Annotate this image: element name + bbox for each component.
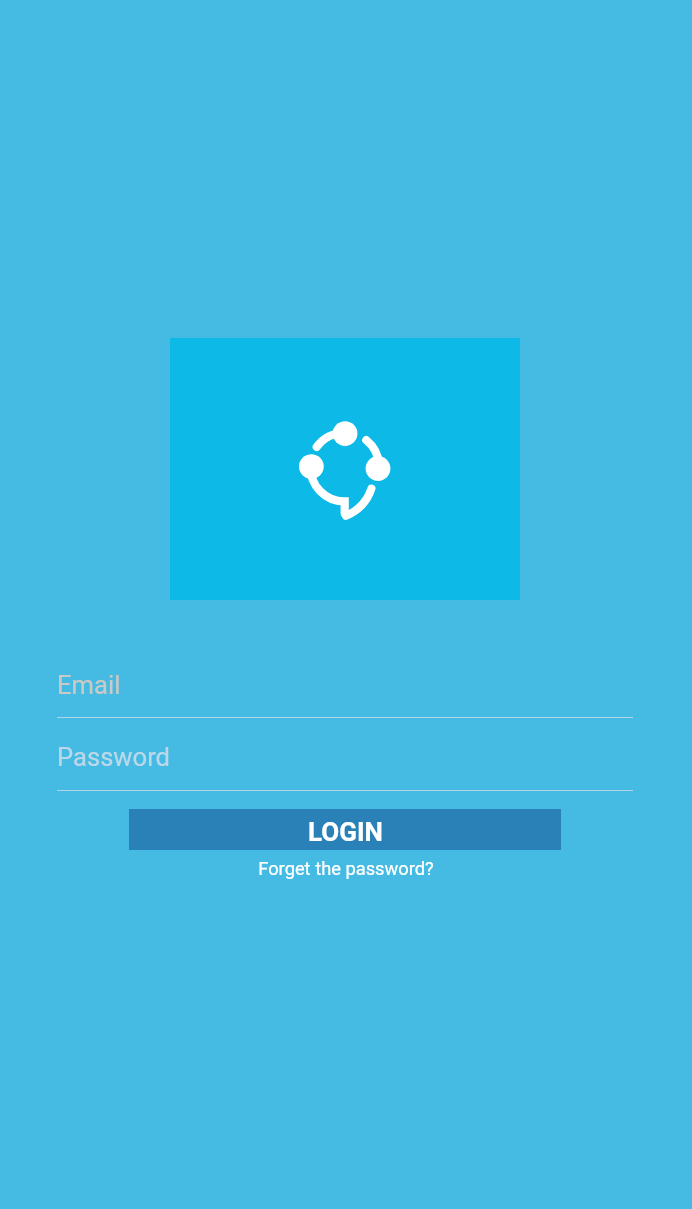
staticText: LOGIN — [308, 817, 383, 847]
button[interactable]: Email — [55, 658, 631, 716]
staticText: Email — [57, 670, 121, 700]
staticText: Password — [57, 742, 171, 772]
staticText: Forget the password? — [258, 858, 434, 879]
button[interactable]: Password — [55, 730, 631, 788]
other: App logo — [170, 338, 520, 600]
button[interactable]: Forget the password? — [258, 858, 434, 879]
button[interactable]: LOGIN — [129, 809, 561, 850]
